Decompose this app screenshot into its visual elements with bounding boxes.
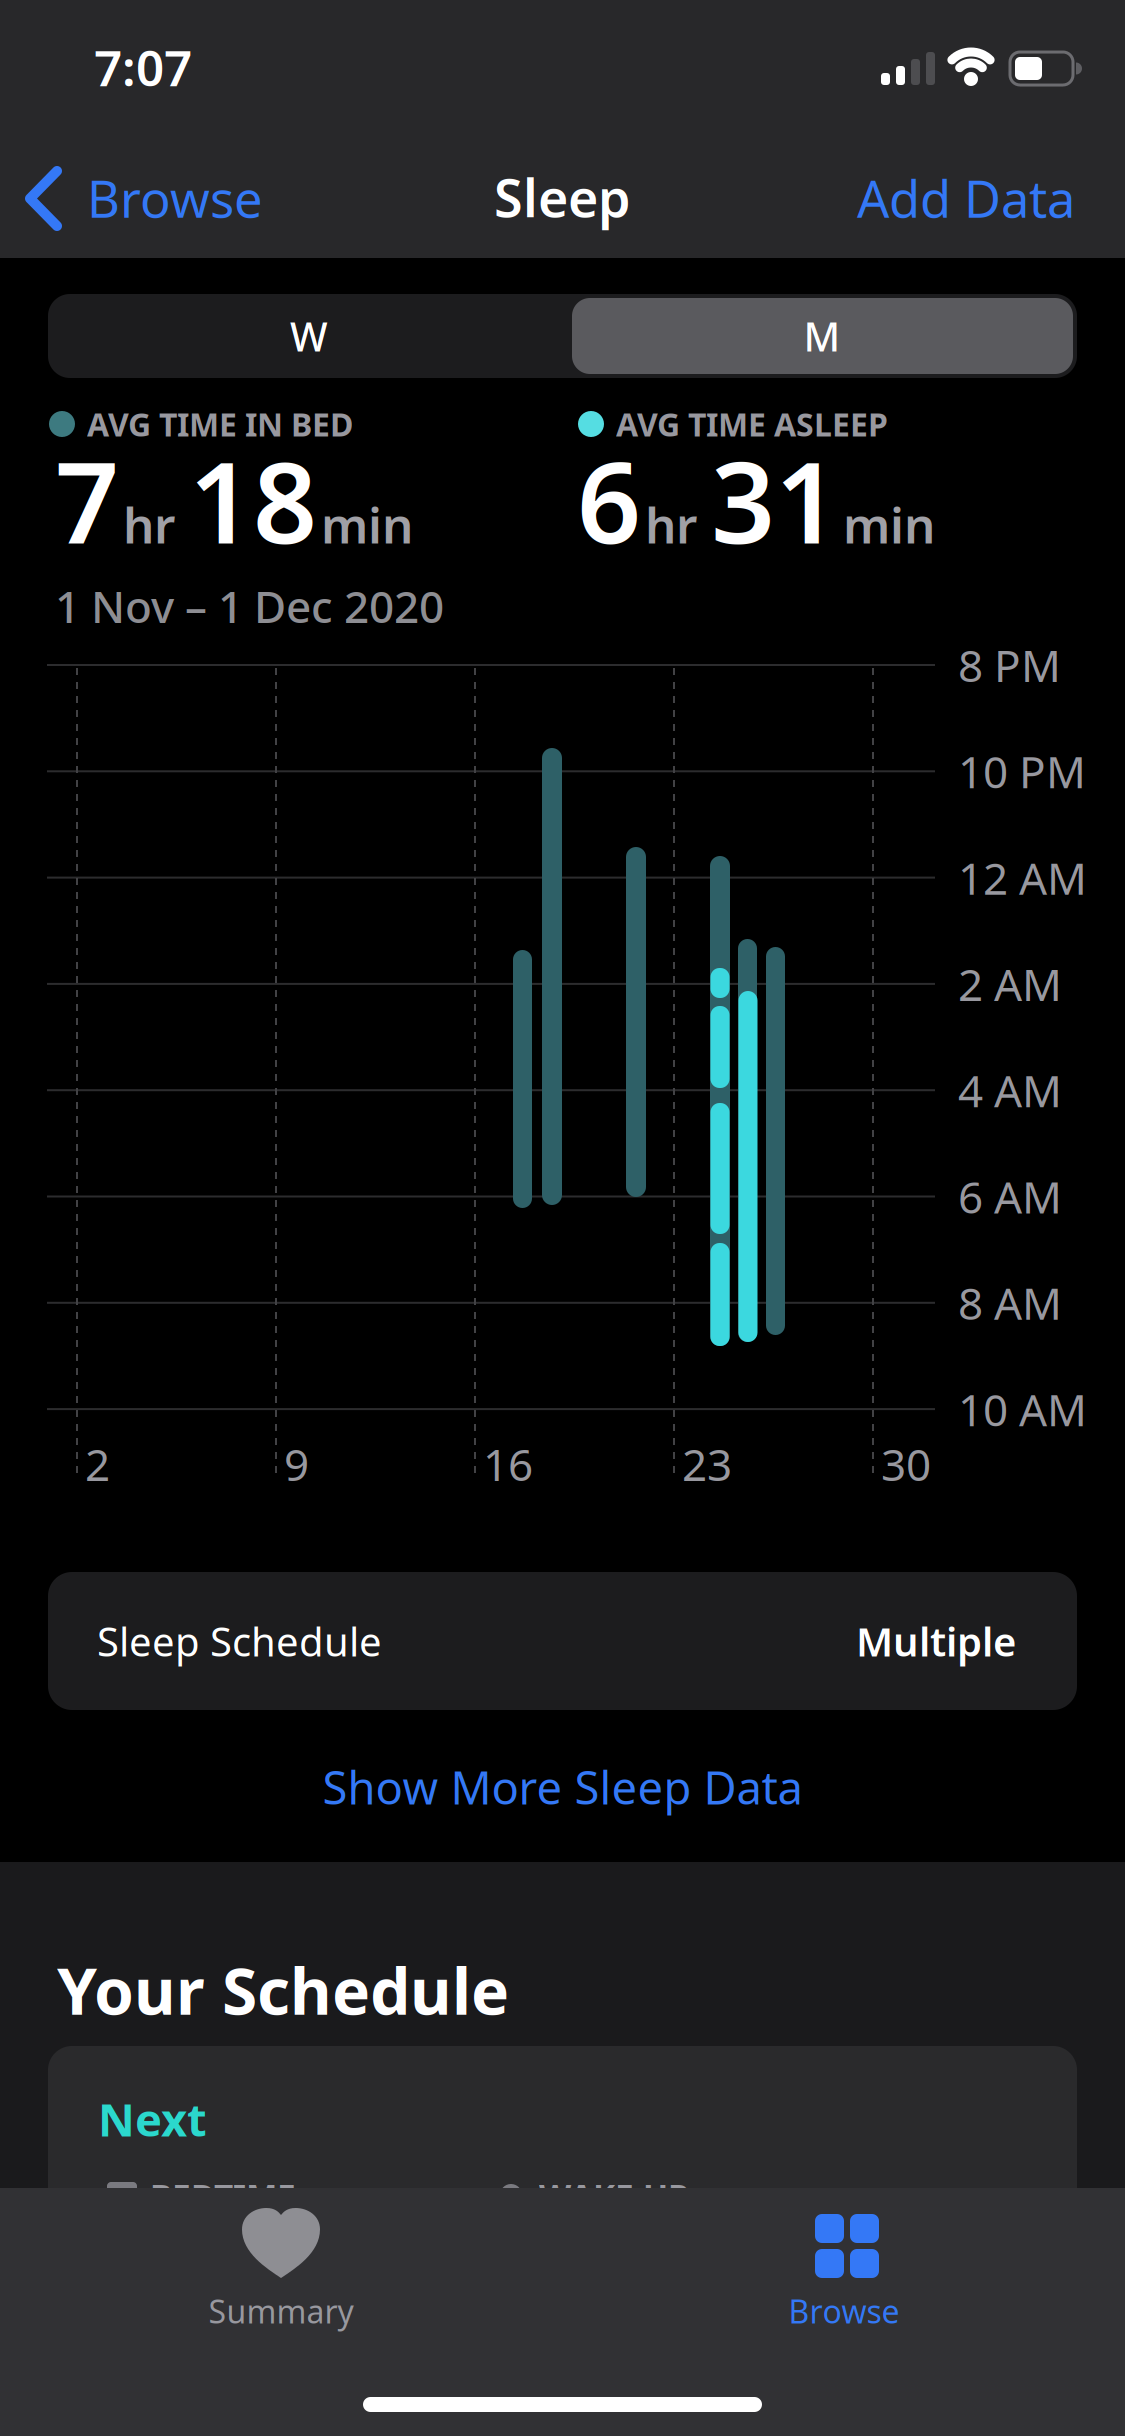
staticText: Sleep — [494, 162, 631, 232]
staticText: 7:07 — [94, 34, 192, 100]
staticText: 23 — [682, 1435, 732, 1493]
staticText: 10 AM — [958, 1380, 1087, 1438]
staticText: Summary — [208, 2290, 353, 2332]
staticText: 8 AM — [958, 1274, 1062, 1332]
staticText: min — [321, 492, 413, 557]
staticText: AVG TIME ASLEEP — [616, 403, 888, 445]
staticText: hr — [645, 492, 697, 557]
staticText: 2 — [85, 1435, 110, 1493]
staticText: min — [843, 492, 935, 557]
staticText: 7 — [55, 426, 119, 574]
staticText: 30 — [881, 1435, 931, 1493]
staticText: 1 Nov – 1 Dec 2020 — [55, 577, 444, 635]
staticText: 31 — [711, 426, 839, 574]
staticText: 12 AM — [958, 848, 1087, 907]
staticText: 9 — [284, 1435, 309, 1493]
staticText: Next — [98, 2089, 207, 2149]
staticText: 6 — [577, 426, 641, 574]
staticText: W — [290, 309, 328, 362]
staticText: 4 AM — [958, 1061, 1062, 1119]
staticText: 18 — [189, 426, 317, 574]
staticText: WAKE UP — [539, 2174, 689, 2218]
staticText: 8 PM — [958, 636, 1061, 694]
staticText: 2 AM — [958, 955, 1062, 1013]
staticText: Your Schedule — [57, 1947, 509, 2032]
staticText: BEDTIME — [150, 2174, 296, 2218]
staticText: Browse — [87, 164, 263, 232]
staticText: AVG TIME IN BED — [87, 403, 353, 445]
staticText: Show More Sleep Data — [322, 1757, 802, 1817]
staticText: Sleep Schedule — [97, 1614, 382, 1667]
staticText: Browse — [788, 2290, 899, 2332]
staticText: hr — [123, 492, 175, 557]
staticText: Add Data — [857, 164, 1075, 232]
staticText: 16 — [483, 1435, 533, 1493]
staticText: Multiple — [856, 1614, 1016, 1667]
staticText: 10 PM — [958, 742, 1086, 800]
staticText: M — [803, 309, 840, 362]
staticText: 6 AM — [958, 1167, 1062, 1226]
